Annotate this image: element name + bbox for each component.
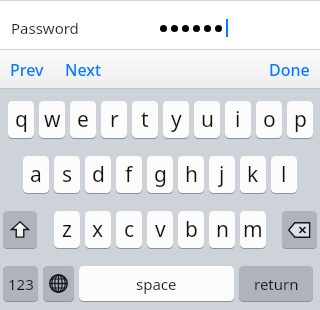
- button[interactable]: v: [147, 211, 173, 249]
- staticText: p: [294, 105, 307, 134]
- button[interactable]: s: [54, 156, 80, 194]
- button[interactable]: t: [132, 101, 158, 139]
- button[interactable]: w: [39, 101, 65, 139]
- staticText: n: [216, 215, 229, 244]
- staticText: b: [185, 215, 198, 244]
- staticText: q: [15, 105, 28, 134]
- staticText: y: [171, 105, 182, 134]
- staticText: 123: [8, 274, 34, 294]
- button[interactable]: g: [147, 156, 173, 194]
- staticText: Prev: [10, 59, 44, 81]
- button[interactable]: return: [239, 266, 313, 302]
- button[interactable]: r: [101, 101, 127, 139]
- button[interactable]: m: [240, 211, 266, 249]
- staticText: i: [235, 105, 241, 134]
- staticText: w: [44, 105, 61, 134]
- button[interactable]: x: [85, 211, 111, 249]
- button[interactable]: j: [209, 156, 235, 194]
- staticText: f: [125, 160, 133, 189]
- button[interactable]: Backspace: [282, 211, 317, 249]
- button[interactable]: u: [194, 101, 220, 139]
- button[interactable]: Done: [257, 59, 320, 81]
- staticText: l: [281, 160, 287, 189]
- button[interactable]: y: [163, 101, 189, 139]
- button[interactable]: Shift: [3, 211, 37, 249]
- staticText: Next: [65, 59, 102, 81]
- button[interactable]: d: [85, 156, 111, 194]
- button[interactable]: o: [256, 101, 282, 139]
- button[interactable]: i: [225, 101, 251, 139]
- button[interactable]: e: [70, 101, 96, 139]
- staticText: z: [62, 215, 72, 244]
- staticText: d: [92, 160, 105, 189]
- button[interactable]: c: [116, 211, 142, 249]
- button[interactable]: a: [23, 156, 49, 194]
- staticText: x: [92, 215, 104, 244]
- staticText: e: [77, 105, 89, 134]
- staticText: Password: [11, 18, 79, 38]
- button[interactable]: l: [271, 156, 297, 194]
- staticText: k: [247, 160, 259, 189]
- staticText: j: [219, 160, 225, 189]
- staticText: a: [30, 160, 42, 189]
- staticText: m: [243, 215, 263, 244]
- staticText: space: [136, 274, 177, 294]
- button[interactable]: n: [209, 211, 235, 249]
- staticText: h: [185, 160, 198, 189]
- button[interactable]: Next: [54, 59, 112, 81]
- staticText: o: [263, 105, 276, 134]
- button[interactable]: q: [8, 101, 34, 139]
- button[interactable]: h: [178, 156, 204, 194]
- button[interactable]: b: [178, 211, 204, 249]
- button[interactable]: z: [54, 211, 80, 249]
- staticText: r: [110, 105, 119, 134]
- staticText: v: [155, 215, 166, 244]
- staticText: t: [141, 105, 149, 134]
- button[interactable]: 123: [3, 266, 38, 302]
- staticText: s: [62, 160, 73, 189]
- staticText: u: [201, 105, 214, 134]
- staticText: c: [124, 215, 135, 244]
- button[interactable]: f: [116, 156, 142, 194]
- staticText: Done: [269, 59, 310, 81]
- button[interactable]: Password: [0, 5, 320, 50]
- button[interactable]: p: [287, 101, 313, 139]
- button[interactable]: Prev: [0, 59, 54, 81]
- staticText: g: [154, 160, 167, 189]
- button[interactable]: Change keyboard: [43, 266, 74, 302]
- button[interactable]: space: [79, 266, 234, 302]
- staticText: return: [254, 274, 299, 294]
- button[interactable]: k: [240, 156, 266, 194]
